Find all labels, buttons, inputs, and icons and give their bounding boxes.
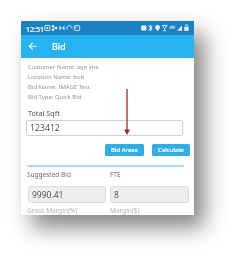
staticText: Bid Type: Quick Bid xyxy=(28,93,82,101)
staticText: Bid xyxy=(52,41,66,53)
staticText: 123412 xyxy=(30,122,60,134)
staticText: Customer Name: age she xyxy=(28,63,99,71)
staticText: Total Sqft xyxy=(28,108,60,118)
button[interactable]: Back xyxy=(23,36,43,56)
staticText: FTE xyxy=(110,170,121,179)
staticText: Gross Margin(%) xyxy=(27,206,78,215)
button[interactable]: 123412 xyxy=(26,120,183,136)
staticText: Location Name: bob xyxy=(28,73,85,81)
button[interactable]: Calculate xyxy=(152,144,190,156)
staticText: Calculate xyxy=(158,146,184,154)
staticText: 8 xyxy=(114,189,119,201)
staticText: Bid Name: IMAGE Test xyxy=(28,83,90,91)
staticText: Margin($) xyxy=(110,206,140,215)
button[interactable]: Bid Areas xyxy=(105,144,144,156)
button[interactable]: 9990.41 xyxy=(28,186,106,203)
staticText: 12:51 xyxy=(26,25,44,35)
staticText: Bid Areas xyxy=(111,146,138,154)
staticText: 9990.41 xyxy=(32,189,64,201)
button[interactable]: 8 xyxy=(110,186,189,203)
staticText: Suggested Bid xyxy=(27,170,71,179)
